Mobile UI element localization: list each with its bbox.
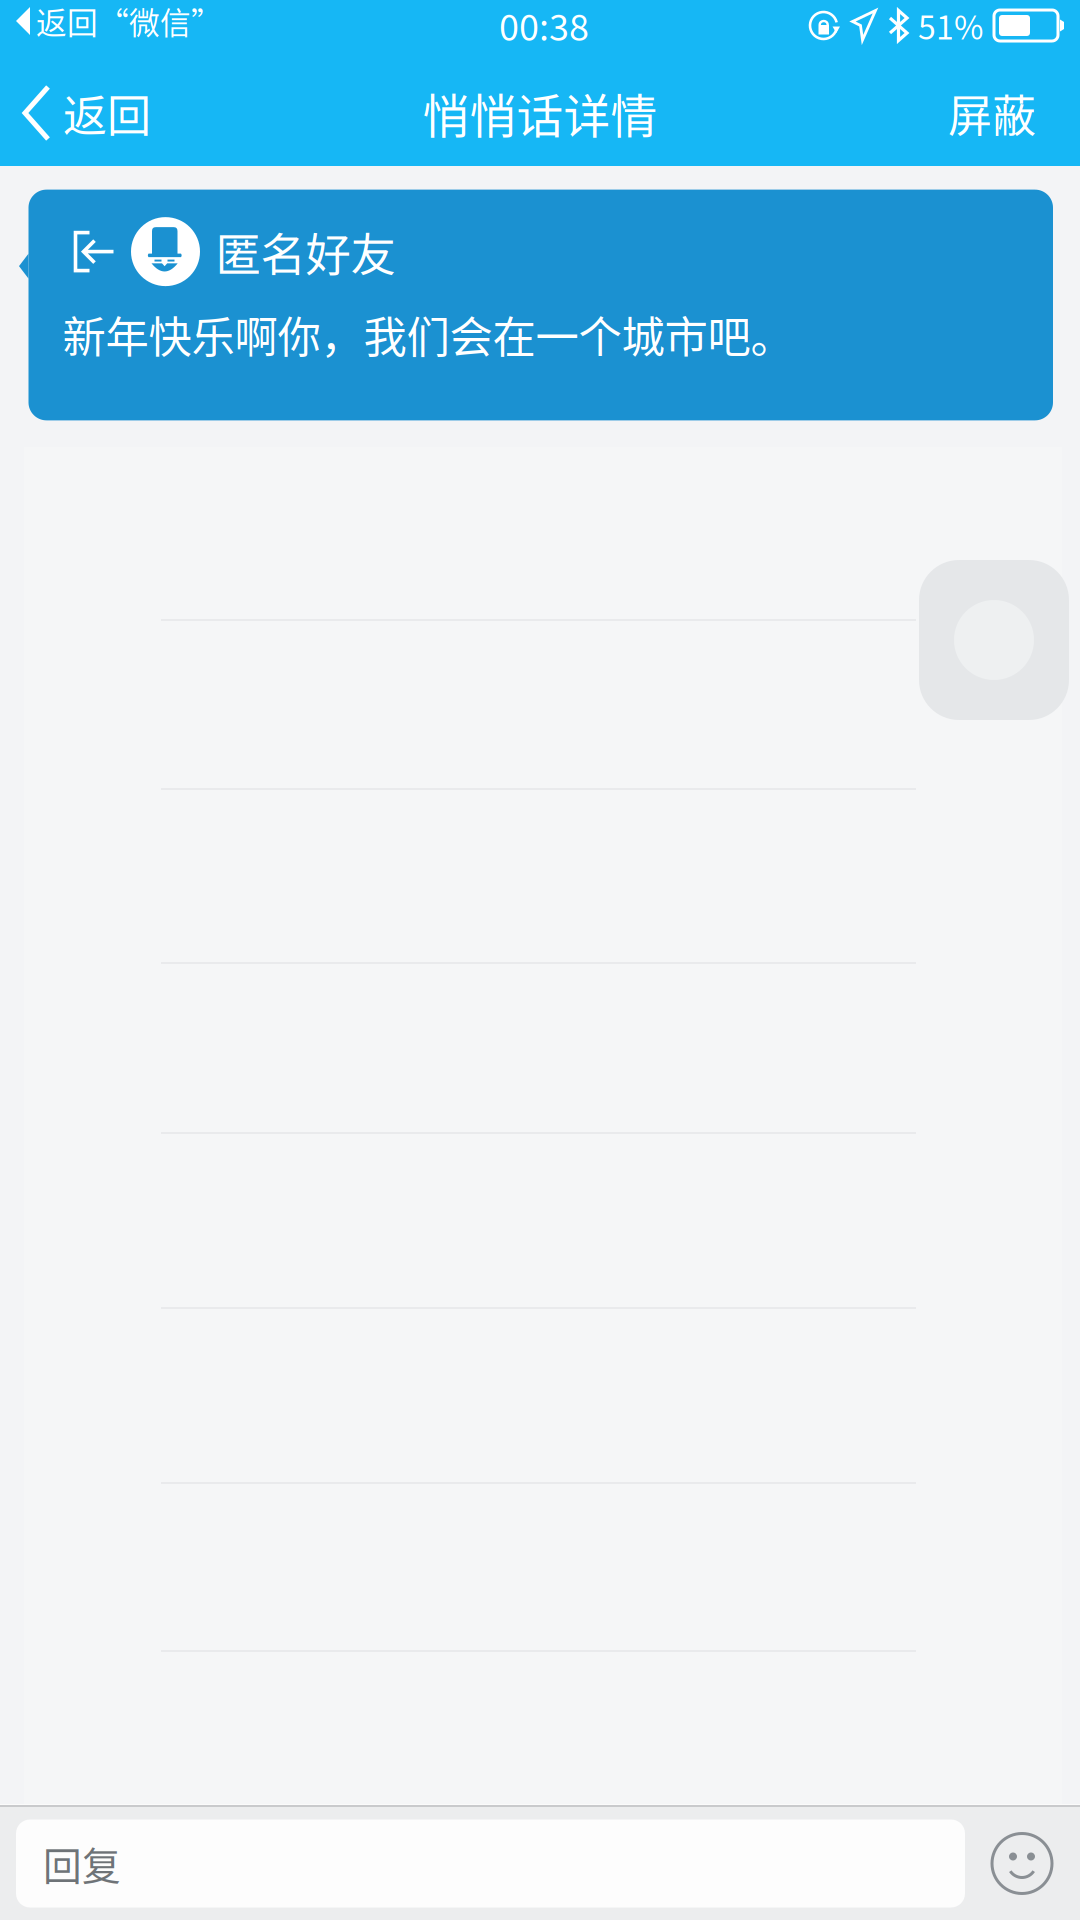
staticText: 00:38: [499, 0, 589, 51]
button[interactable]: 返回: [0, 63, 151, 163]
button[interactable]: 返回“微信”: [0, 0, 222, 61]
staticText: 51%: [918, 2, 983, 49]
staticText: 悄悄话详情: [422, 79, 657, 147]
staticText: 屏蔽: [948, 81, 1036, 145]
staticText: 匿名好友: [215, 219, 395, 284]
button[interactable]: 回复: [16, 1819, 965, 1907]
button[interactable]: 表情: [992, 1833, 1052, 1893]
button[interactable]: 屏蔽: [948, 59, 1080, 167]
staticText: 新年快乐啊你，我们会在一个城市吧。: [62, 303, 793, 365]
staticText: 返回: [63, 81, 151, 145]
button[interactable]: 匿名好友: [0, 192, 1080, 418]
staticText: 回复: [43, 1835, 121, 1891]
button[interactable]: 辅助触控: [919, 560, 1069, 720]
staticText: 返回“微信”: [36, 0, 222, 43]
